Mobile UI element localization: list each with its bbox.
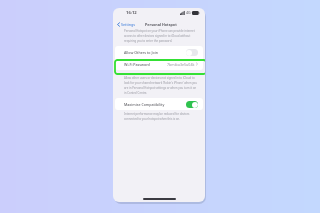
button[interactable]: Maximise Compatibility bbox=[115, 98, 203, 110]
staticText: 16:12 bbox=[126, 10, 137, 16]
button[interactable]: Settings bbox=[117, 22, 136, 27]
staticText: Settings bbox=[121, 22, 136, 27]
staticText: Allow Others to Join bbox=[124, 50, 158, 55]
button[interactable]: Allow Others to Join bbox=[115, 46, 203, 58]
staticText: Personal Hotspot on your iPhone can prov… bbox=[124, 29, 199, 43]
staticText: 7bmibu3e5u04k bbox=[167, 62, 195, 67]
staticText: 4G bbox=[186, 10, 191, 15]
staticText: Personal Hotspot bbox=[145, 22, 177, 27]
staticText: Maximise Compatibility bbox=[124, 102, 165, 107]
staticText: Allow other users or devices not signed … bbox=[124, 76, 199, 95]
button[interactable]: Switch on bbox=[186, 101, 198, 108]
staticText: Wi-Fi Password bbox=[124, 62, 150, 67]
staticText: Internet performance may be reduced for … bbox=[124, 112, 199, 121]
button[interactable]: Switch off bbox=[186, 49, 198, 56]
button[interactable]: Wi-Fi Password bbox=[115, 58, 203, 70]
